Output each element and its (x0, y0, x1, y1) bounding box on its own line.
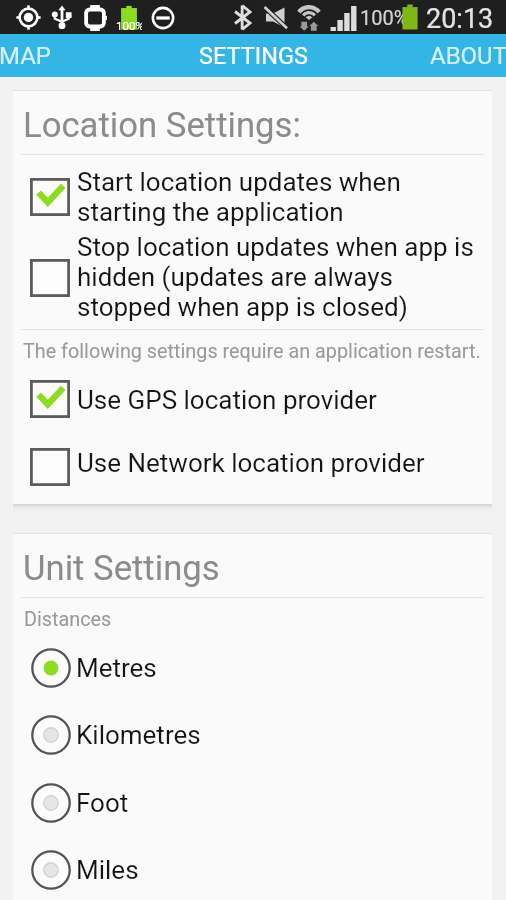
staticText: Foot (76, 788, 129, 818)
button[interactable]: Checked option (13, 372, 492, 426)
staticText: Use Network location provider (77, 448, 425, 478)
staticText: Miles (76, 855, 139, 885)
staticText: 100% (116, 19, 142, 32)
staticText: Use GPS location provider (77, 385, 377, 415)
button[interactable]: Unchecked option (13, 251, 492, 305)
staticText: Metres (76, 653, 157, 683)
staticText: Location Settings: (23, 105, 301, 146)
staticText: Unit Settings (23, 548, 220, 589)
staticText: Start location updates when starting the… (77, 167, 401, 227)
button[interactable]: Foot (13, 769, 492, 836)
staticText: Kilometres (76, 720, 201, 750)
staticText: Stop location updates when app is hidden… (77, 232, 474, 322)
staticText: SETTINGS (199, 42, 308, 70)
staticText: ABOUT (430, 42, 506, 70)
button[interactable]: MAP (0, 34, 150, 77)
button[interactable]: Miles (13, 836, 492, 900)
staticText: 20:13 (426, 3, 494, 35)
button[interactable]: SETTINGS (160, 34, 346, 77)
button[interactable]: Metres (13, 634, 492, 701)
staticText: The following settings require an applic… (23, 340, 481, 363)
staticText: Distances (24, 608, 112, 631)
button[interactable]: Unchecked option (13, 440, 492, 494)
staticText: MAP (0, 42, 51, 70)
button[interactable]: ABOUT (358, 34, 506, 77)
button[interactable]: Kilometres (13, 701, 492, 768)
staticText: 100% (360, 6, 409, 29)
button[interactable]: Checked option (13, 170, 492, 224)
